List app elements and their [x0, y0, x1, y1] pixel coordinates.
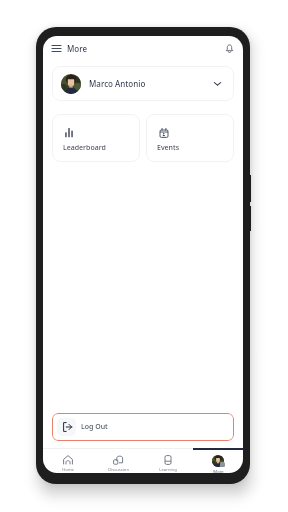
staticText: Home [62, 467, 74, 473]
button[interactable]: More [193, 448, 243, 473]
staticText: More [213, 469, 224, 473]
staticText: Learning [159, 467, 177, 473]
staticText: Leaderboard [63, 143, 106, 153]
staticText: More [67, 43, 88, 54]
button[interactable]: Marco Antonio [52, 66, 234, 101]
staticText: Log Out [81, 422, 108, 432]
staticText: Discussion [108, 467, 129, 473]
button[interactable]: Log Out [52, 413, 234, 441]
button[interactable]: Leaderboard [52, 114, 140, 162]
button[interactable]: Events [146, 114, 234, 162]
button[interactable]: Notifications [222, 41, 236, 55]
button[interactable]: Discussion [93, 448, 143, 473]
button[interactable]: Home [43, 448, 93, 473]
button[interactable]: Menu [49, 41, 63, 55]
staticText: Events [157, 143, 180, 153]
staticText: Marco Antonio [89, 78, 146, 89]
button[interactable]: Learning [143, 448, 193, 473]
